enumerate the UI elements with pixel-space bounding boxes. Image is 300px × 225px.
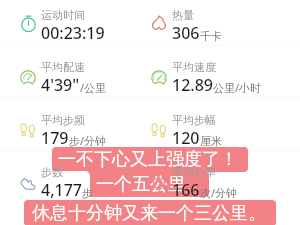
staticText: 平均心率 [172, 165, 216, 179]
staticText: 步 [82, 186, 93, 200]
staticText: 厘米 [200, 134, 222, 148]
button[interactable]: 平均速度 [131, 57, 262, 101]
button[interactable]: 一个五公里 [69, 172, 209, 197]
staticText: 休息十分钟又来一个三公里。 [32, 202, 266, 225]
staticText: 热量 [172, 8, 194, 22]
staticText: 166 [172, 179, 200, 201]
staticText: 4,177 [41, 179, 82, 201]
staticText: 一个五公里 [96, 173, 186, 196]
staticText: 公里/小时 [213, 80, 262, 95]
staticText: 千卡 [200, 29, 222, 43]
staticText: 平均步幅 [172, 113, 216, 127]
button[interactable]: 一不下心又上强度了！ [52, 147, 248, 172]
button[interactable]: 步数 [0, 162, 131, 206]
staticText: 00:23:19 [41, 22, 105, 44]
button[interactable]: 休息十分钟又来一个三公里。 [24, 200, 276, 225]
staticText: 次/分钟 [200, 185, 238, 200]
staticText: 平均步频 [41, 113, 85, 127]
staticText: 一不下心又上强度了！ [58, 148, 238, 171]
staticText: 12.89 [172, 74, 213, 96]
staticText: 平均速度 [172, 60, 216, 74]
staticText: 步/分钟 [69, 133, 107, 148]
button[interactable]: 平均配速 [0, 57, 131, 101]
button[interactable]: 平均心率 [131, 162, 262, 206]
staticText: 120 [172, 127, 200, 149]
staticText: 306 [172, 22, 200, 44]
button[interactable]: 平均步幅 [131, 110, 262, 154]
staticText: /公里 [80, 80, 107, 95]
button[interactable]: 运动时间 [0, 5, 131, 49]
staticText: 179 [41, 127, 69, 149]
staticText: 平均配速 [41, 60, 85, 74]
staticText: 4'39" [41, 74, 80, 96]
button[interactable]: 热量 [131, 5, 262, 49]
staticText: 步数 [41, 165, 63, 179]
button[interactable]: 平均步频 [0, 110, 131, 154]
staticText: 运动时间 [41, 8, 85, 22]
